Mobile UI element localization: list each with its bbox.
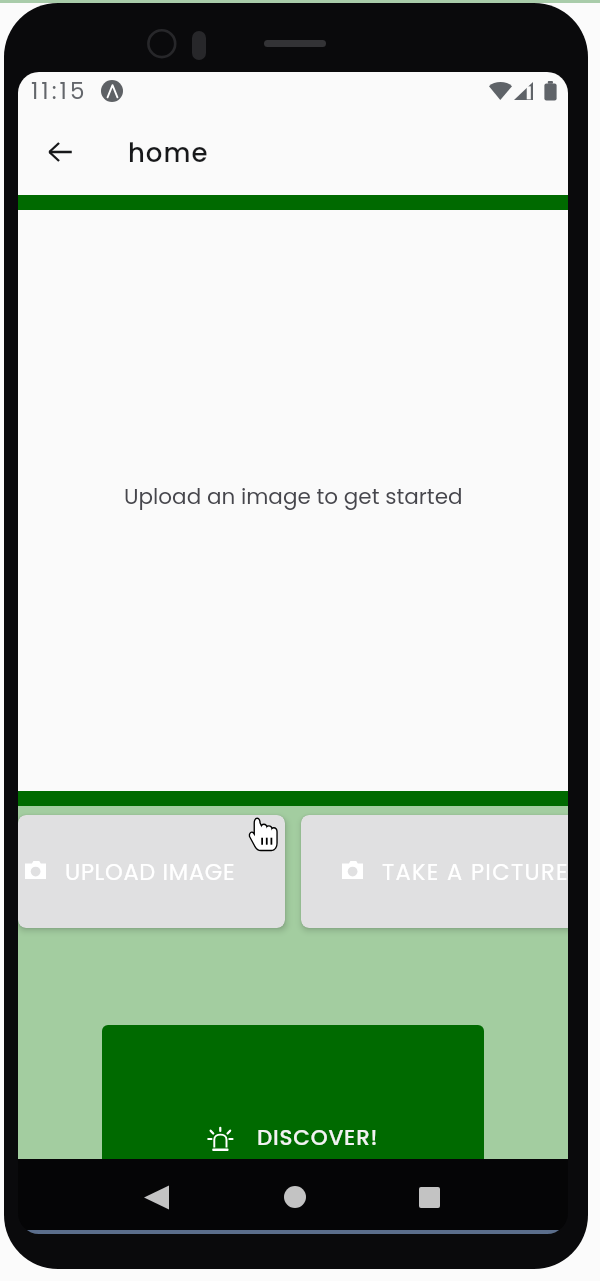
button[interactable]: TAKE A PICTURE [301, 815, 568, 928]
staticText: home [128, 135, 209, 171]
staticText: TAKE A PICTURE [382, 856, 568, 887]
staticText: UPLOAD IMAGE [65, 856, 236, 887]
button[interactable]: Back [132, 1173, 180, 1221]
button[interactable]: Navigate up [26, 118, 94, 186]
button[interactable]: UPLOAD IMAGE [18, 815, 285, 928]
button[interactable]: Home [271, 1173, 319, 1221]
staticText: DISCOVER! [257, 1122, 379, 1152]
button[interactable]: Recent apps [405, 1173, 453, 1221]
button[interactable]: DISCOVER! [102, 1025, 484, 1160]
staticText: Upload an image to get started [124, 481, 463, 511]
staticText: 11:15 [31, 75, 88, 107]
